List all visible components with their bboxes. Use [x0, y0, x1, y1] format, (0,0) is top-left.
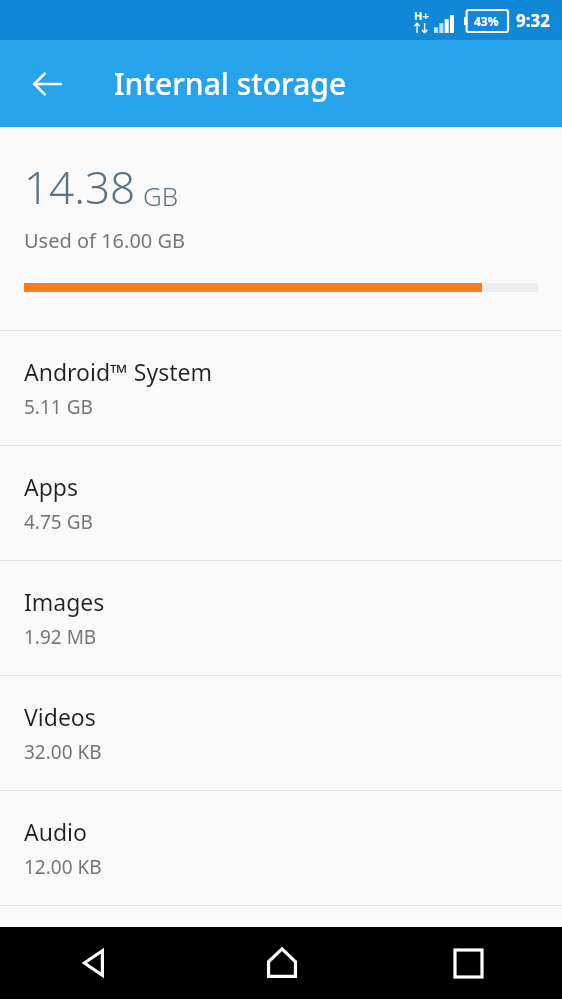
- staticText: 43%: [474, 13, 499, 29]
- button[interactable]: Android™ System: [0, 331, 562, 445]
- staticText: Apps: [24, 471, 79, 502]
- button[interactable]: Videos: [0, 676, 562, 790]
- staticText: Images: [24, 586, 105, 617]
- button[interactable]: Apps: [0, 446, 562, 560]
- staticText: Internal storage: [114, 63, 347, 104]
- button[interactable]: Images: [0, 561, 562, 675]
- staticText: 1.92 MB: [24, 624, 97, 650]
- button[interactable]: Home: [188, 927, 375, 999]
- button[interactable]: Back: [13, 50, 81, 118]
- staticText: 12.00 KB: [24, 854, 102, 880]
- staticText: GB: [143, 178, 179, 213]
- staticText: Used of 16.00 GB: [24, 227, 186, 254]
- staticText: 5.11 GB: [24, 394, 93, 420]
- staticText: Audio: [24, 816, 87, 847]
- staticText: H+: [414, 8, 429, 23]
- staticText: Android™ System: [24, 356, 213, 387]
- staticText: 4.75 GB: [24, 509, 93, 535]
- button[interactable]: Back: [0, 927, 188, 999]
- staticText: 9:32: [516, 9, 550, 32]
- staticText: Videos: [24, 701, 96, 732]
- button[interactable]: Recent apps: [375, 927, 562, 999]
- staticText: 14.38: [24, 157, 136, 217]
- button[interactable]: Audio: [0, 791, 562, 905]
- staticText: 32.00 KB: [24, 739, 102, 765]
